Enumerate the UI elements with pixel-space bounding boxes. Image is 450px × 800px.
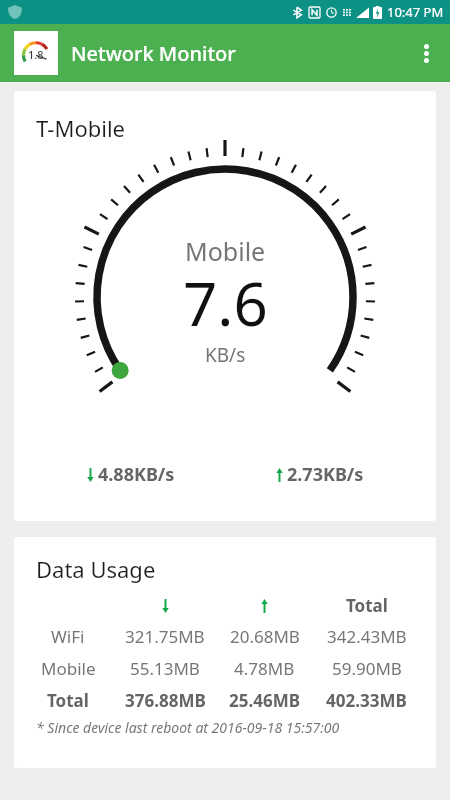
staticText: Network Monitor xyxy=(71,40,236,67)
staticText: * Since device last reboot at 2016-09-18… xyxy=(36,718,340,737)
staticText: 20.68MB xyxy=(230,625,300,648)
staticText: 2.73KB/s xyxy=(287,462,364,487)
staticText: 1.8 xyxy=(28,47,44,62)
staticText: 4.78MB xyxy=(234,657,295,680)
staticText: 402.33MB xyxy=(326,689,407,712)
staticText: KB/s xyxy=(205,342,246,368)
staticText: Total xyxy=(346,594,388,617)
staticText: 376.88MB xyxy=(125,689,206,712)
staticText: Data Usage xyxy=(36,554,156,584)
staticText: Mobile xyxy=(41,657,96,680)
staticText: Mobile xyxy=(185,234,266,268)
staticText: T-Mobile xyxy=(36,113,125,143)
staticText: 10:47 PM xyxy=(387,3,444,21)
staticText: 7.6 xyxy=(183,262,268,344)
staticText: 25.46MB xyxy=(229,689,301,712)
staticText: WiFi xyxy=(51,625,85,648)
staticText: 55.13MB xyxy=(130,657,200,680)
staticText: 59.90MB xyxy=(332,657,402,680)
staticText: 4.88KB/s xyxy=(98,462,175,487)
staticText: 342.43MB xyxy=(327,625,407,648)
button[interactable]: More options xyxy=(402,29,450,77)
button[interactable]: Data Usage xyxy=(14,537,436,768)
staticText: Total xyxy=(47,689,89,712)
staticText: 321.75MB xyxy=(125,625,205,648)
button[interactable]: T-Mobile xyxy=(14,91,436,521)
